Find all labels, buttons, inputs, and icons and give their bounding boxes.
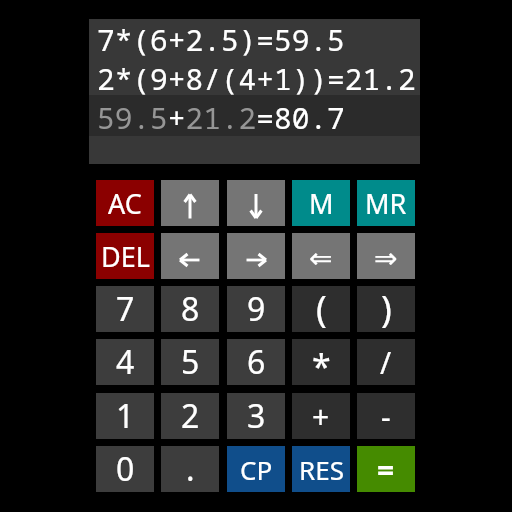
button[interactable]: MR — [357, 180, 415, 226]
staticText: 7 — [116, 287, 135, 331]
button[interactable]: CP — [227, 446, 285, 492]
button[interactable]: 4 — [96, 339, 154, 385]
staticText: - — [381, 396, 391, 437]
button[interactable]: M — [292, 180, 350, 226]
button[interactable]: 0 — [96, 446, 154, 492]
button[interactable]: RES — [292, 446, 350, 492]
staticText: 1 — [116, 394, 135, 438]
button[interactable]: AC — [96, 180, 154, 226]
button[interactable]: 7 — [96, 286, 154, 332]
button[interactable]: + — [292, 393, 350, 439]
staticText: DEL — [101, 238, 150, 275]
button[interactable]: 3 — [227, 393, 285, 439]
button[interactable]: - — [357, 393, 415, 439]
button[interactable]: 1 — [96, 393, 154, 439]
button[interactable]: . — [161, 446, 219, 492]
staticText: = — [377, 449, 395, 490]
staticText: RES — [299, 452, 344, 487]
button[interactable]: / — [357, 339, 415, 385]
staticText: ⇐ — [309, 242, 333, 275]
button[interactable]: ) — [357, 286, 415, 332]
staticText: M — [309, 185, 334, 222]
button[interactable] — [161, 180, 219, 226]
staticText: AC — [108, 185, 142, 222]
staticText: CP — [240, 452, 273, 487]
staticText: . — [186, 447, 195, 491]
button[interactable]: 8 — [161, 286, 219, 332]
button[interactable]: * — [292, 339, 350, 385]
button[interactable]: 5 — [161, 339, 219, 385]
button[interactable]: ( — [292, 286, 350, 332]
button[interactable] — [227, 180, 285, 226]
staticText: 9 — [247, 287, 266, 331]
button[interactable]: ⇐ — [292, 233, 350, 279]
staticText: ⇒ — [374, 242, 398, 275]
button[interactable]: DEL — [96, 233, 154, 279]
staticText: * — [312, 343, 331, 389]
staticText: 2*(9+8/(4+1))=21.2 — [97, 58, 416, 98]
staticText: 7*(6+2.5)=59.5 — [97, 19, 345, 59]
staticText: 0 — [116, 447, 135, 491]
staticText: ) — [381, 284, 392, 330]
staticText: 3 — [247, 394, 266, 438]
staticText: / — [380, 342, 392, 383]
button[interactable]: = — [357, 446, 415, 492]
staticText: 4 — [116, 340, 135, 384]
button[interactable]: ⇒ — [357, 233, 415, 279]
button[interactable] — [227, 233, 285, 279]
button[interactable] — [161, 233, 219, 279]
staticText: ( — [316, 284, 327, 330]
staticText: MR — [365, 185, 407, 222]
staticText: 2 — [181, 394, 200, 438]
staticText: 8 — [181, 287, 200, 331]
button[interactable]: 2 — [161, 393, 219, 439]
staticText: + — [312, 396, 330, 437]
staticText: 59.5+21.2=80.7 — [97, 97, 345, 137]
staticText: 5 — [181, 340, 200, 384]
button[interactable]: 6 — [227, 339, 285, 385]
staticText: 6 — [247, 340, 266, 384]
button[interactable]: 9 — [227, 286, 285, 332]
